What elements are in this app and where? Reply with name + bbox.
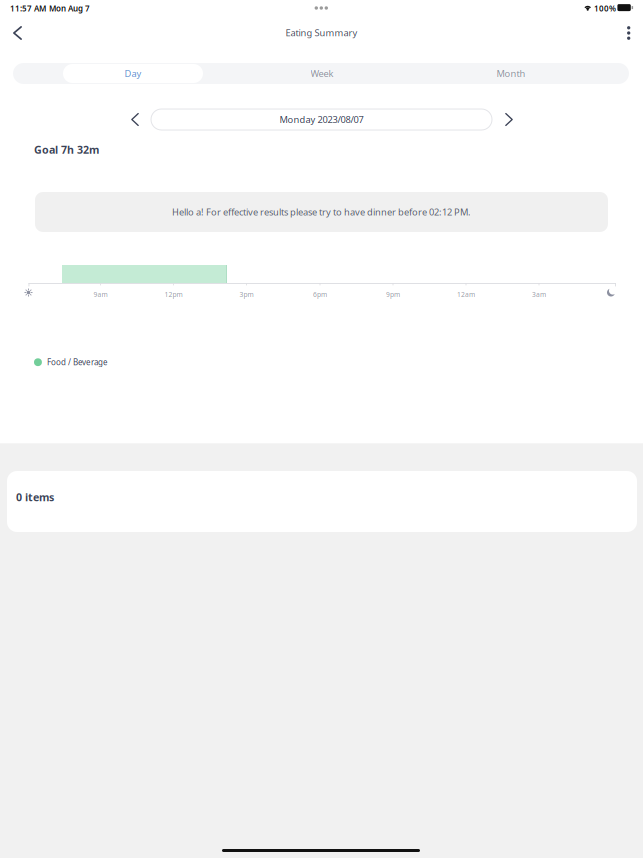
button[interactable]: Week (252, 63, 392, 84)
button[interactable]: Back (3, 18, 39, 48)
staticText: 100% (594, 3, 616, 14)
staticText: 9pm (386, 290, 400, 299)
button[interactable]: Monday 2023/08/07 (151, 109, 492, 130)
staticText: Mon Aug 7 (49, 3, 90, 14)
button[interactable]: Next day (495, 106, 523, 133)
button[interactable]: More options (611, 18, 641, 48)
button[interactable]: Day (63, 64, 203, 83)
button[interactable]: Month (441, 63, 581, 84)
staticText: 12pm (164, 290, 182, 299)
staticText: 3pm (239, 290, 253, 299)
staticText: Monday 2023/08/07 (279, 113, 363, 126)
staticText: Eating Summary (285, 26, 357, 39)
staticText: 9am (93, 290, 107, 299)
staticText: Day (124, 67, 141, 80)
staticText: 0 items (16, 490, 54, 504)
button[interactable]: Previous day (121, 106, 149, 133)
staticText: 6pm (313, 290, 327, 299)
staticText: Hello a! For effective results please tr… (172, 206, 471, 218)
staticText: 3am (532, 290, 546, 299)
staticText: Month (496, 67, 525, 80)
staticText: Food / Beverage (47, 357, 108, 367)
staticText: 11:57 AM (10, 3, 46, 14)
staticText: Goal 7h 32m (34, 143, 99, 157)
staticText: Week (310, 67, 333, 80)
staticText: 12am (457, 290, 475, 299)
